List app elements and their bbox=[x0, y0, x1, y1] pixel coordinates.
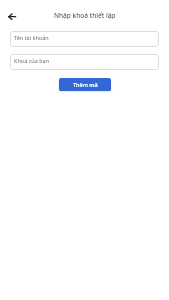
button[interactable]: Thêm mã bbox=[59, 78, 111, 91]
staticText: Tên tài khoản bbox=[14, 34, 49, 41]
staticText: Thêm mã bbox=[73, 81, 98, 88]
button[interactable]: Tên tài khoản bbox=[10, 31, 159, 47]
staticText: Nhập khoá thiết lập bbox=[54, 11, 116, 19]
button[interactable]: Back bbox=[2, 6, 24, 28]
staticText: Khoá của bạn bbox=[14, 57, 50, 64]
button[interactable]: Khoá của bạn bbox=[10, 54, 159, 70]
